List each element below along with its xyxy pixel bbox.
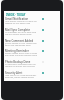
staticText: 42 new items uploaded from the <box>5 63 36 66</box>
button[interactable]: New Comment Added <box>4 39 60 50</box>
staticText: New Comment Added <box>5 39 34 43</box>
staticText: reading on this device now <box>5 22 31 25</box>
staticText: Jordan replied to your recent post <box>5 42 37 45</box>
button[interactable]: Mail Sync Complete <box>4 28 60 39</box>
button[interactable]: Meeting Reminder <box>4 49 60 60</box>
staticText: camera roll earlier this morning <box>5 65 35 68</box>
staticText: Your weekly summary is ready for <box>5 20 37 23</box>
staticText: New sign-in on a Pixel device was <box>5 74 37 77</box>
staticText: about the new design work <box>5 44 31 47</box>
staticText: Gmail Notification <box>5 17 29 21</box>
button[interactable]: Gmail Notification <box>4 17 60 28</box>
staticText: Design review starts soon at three <box>5 52 37 55</box>
staticText: Mail Sync Complete <box>5 28 31 32</box>
button[interactable]: Security Alert <box>4 71 60 82</box>
staticText: All messages are up to date since <box>5 31 37 34</box>
staticText: the last refresh earlier today <box>5 33 32 36</box>
staticText: pm inside the main meeting room <box>5 54 38 57</box>
button[interactable]: Photo Backup Done <box>4 60 60 71</box>
staticText: detected, please review activity <box>5 76 35 79</box>
staticText: Meeting Reminder <box>5 49 29 53</box>
staticText: Photo Backup Done <box>5 60 31 64</box>
staticText: INBOX · TODAY <box>6 13 26 17</box>
staticText: Security Alert <box>5 71 23 75</box>
